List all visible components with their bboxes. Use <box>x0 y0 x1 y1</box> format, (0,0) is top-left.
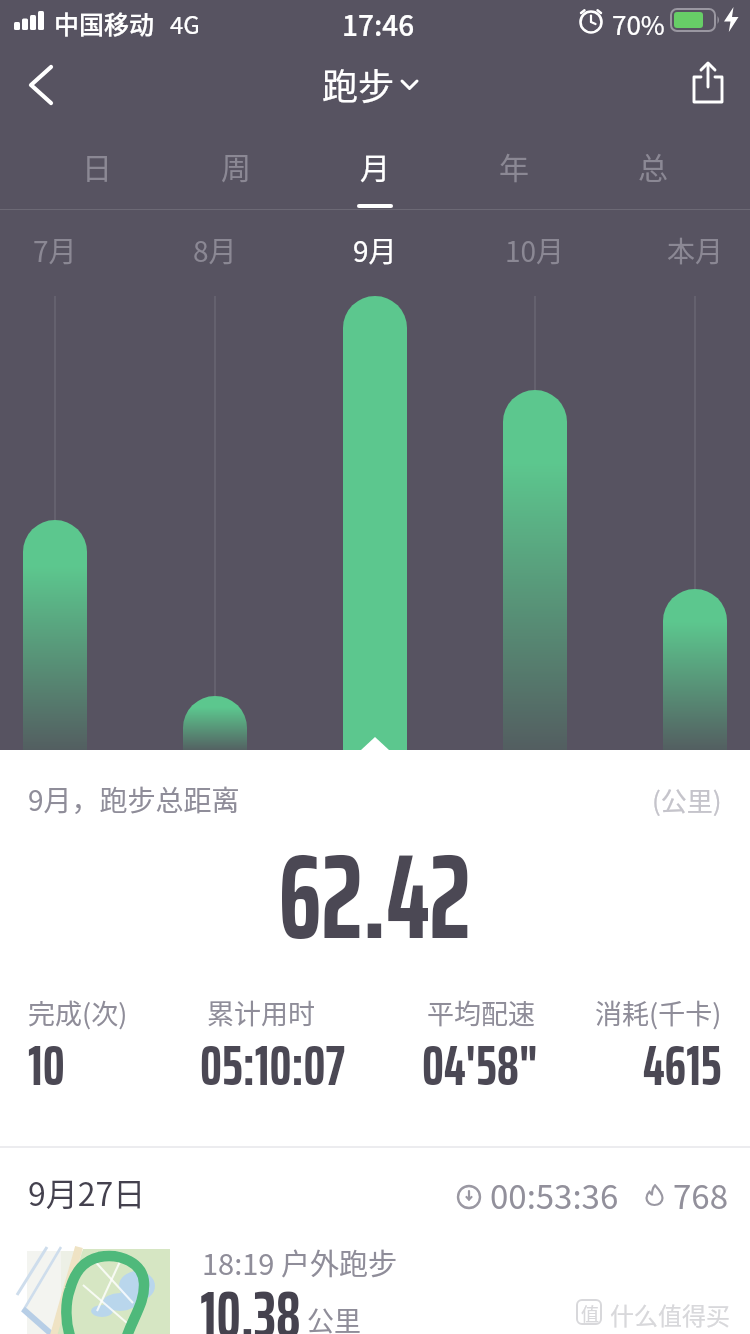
staticText: 7月 <box>33 230 77 271</box>
staticText: 70% <box>612 5 665 43</box>
staticText: 累计用时 <box>207 993 315 1032</box>
staticText: 9月，跑步总距离 <box>28 779 240 820</box>
staticText: 年 <box>499 144 529 187</box>
staticText: (公里) <box>652 781 722 819</box>
staticText: 10月 <box>505 230 565 271</box>
staticText: 周 <box>221 144 251 187</box>
staticText: 什么值得买 <box>610 1297 730 1332</box>
staticText: 跑步 <box>322 58 395 110</box>
staticText: 完成(次) <box>28 993 128 1032</box>
staticText: 日 <box>82 144 112 187</box>
staticText: 4615 <box>643 1023 722 1110</box>
staticText: 10.38 <box>200 1262 301 1334</box>
staticText: 04'58" <box>422 1023 538 1110</box>
staticText: 中国移动 <box>54 5 155 41</box>
staticText: 17:46 <box>342 4 415 45</box>
staticText: 00:53:36 <box>490 1171 619 1219</box>
staticText: 9月 <box>353 230 397 271</box>
staticText: 本月 <box>667 230 724 271</box>
staticText: 768 <box>673 1171 728 1219</box>
staticText: 05:10:07 <box>200 1023 345 1110</box>
staticText: 9月27日 <box>28 1169 146 1215</box>
staticText: 8月 <box>193 230 237 271</box>
staticText: 总 <box>638 144 668 187</box>
staticText: 62.42 <box>278 802 471 991</box>
staticText: 公里 <box>307 1300 361 1334</box>
staticText: 平均配速 <box>427 993 535 1032</box>
staticText: 4G <box>170 6 200 41</box>
staticText: 18:19 户外跑步 <box>202 1241 397 1283</box>
staticText: 10 <box>28 1023 65 1110</box>
staticText: 值 <box>581 1300 599 1326</box>
staticText: 月 <box>360 144 390 187</box>
staticText: 消耗(千卡) <box>595 993 722 1032</box>
